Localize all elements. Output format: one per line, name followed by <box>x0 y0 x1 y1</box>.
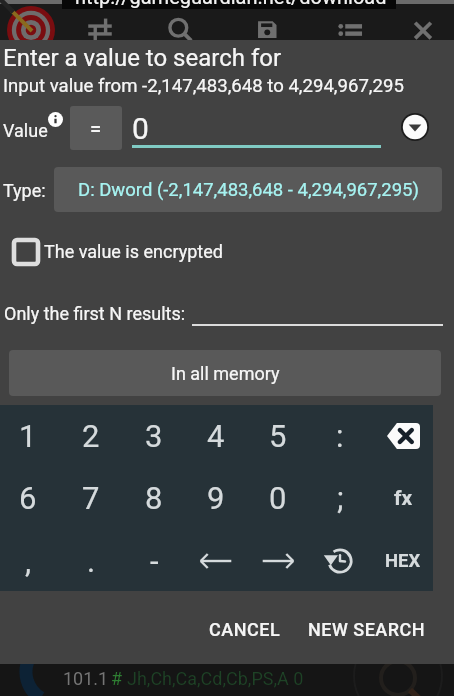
button[interactable]: 9 <box>185 467 247 529</box>
staticText: 101.1 <box>63 668 109 689</box>
staticText: NEW SEARCH <box>308 619 426 640</box>
staticText: 0 <box>132 111 149 146</box>
button[interactable]: In all memory <box>9 350 441 396</box>
button[interactable]: ; <box>309 467 371 529</box>
staticText: Jh,Ch,Ca,Cd,Cb,PS,A 0 <box>127 668 304 689</box>
staticText: # <box>111 668 123 689</box>
button[interactable]: The value is encrypted <box>6 236 236 268</box>
button[interactable]: Settings <box>86 16 114 44</box>
button[interactable]: Backspace <box>372 405 434 467</box>
staticText: Enter a value to search for <box>3 44 282 72</box>
staticText: The value is encrypted <box>44 241 223 262</box>
button[interactable]: 6 <box>0 467 59 529</box>
staticText: . <box>87 543 96 579</box>
staticText: , <box>25 543 32 579</box>
button[interactable]: 2 <box>60 405 122 467</box>
staticText: Value <box>3 120 48 141</box>
staticText: HEX <box>385 550 421 572</box>
button[interactable]: NEW SEARCH <box>297 610 437 648</box>
staticText: 3 <box>145 418 163 454</box>
staticText: Type: <box>3 180 46 201</box>
staticText: = <box>90 117 102 140</box>
staticText: Only the first N results: <box>4 303 186 324</box>
button[interactable]: Search <box>166 16 194 44</box>
staticText: - <box>150 543 159 579</box>
button[interactable]: Choose comparison <box>401 113 429 141</box>
button[interactable]: 4 <box>185 405 247 467</box>
button[interactable]: 8 <box>123 467 185 529</box>
button[interactable]: Move left <box>185 530 247 592</box>
button[interactable]: Move right <box>247 530 309 592</box>
staticText: CANCEL <box>209 619 281 640</box>
button[interactable]: Hex mode <box>372 530 434 592</box>
button[interactable]: History <box>309 530 371 592</box>
staticText: 9 <box>207 480 225 516</box>
button[interactable]: Save <box>253 15 281 43</box>
button[interactable]: , <box>0 530 59 592</box>
button[interactable]: Saved list <box>336 16 364 44</box>
button[interactable]: : <box>309 405 371 467</box>
button[interactable] <box>192 290 443 326</box>
button[interactable]: 3 <box>123 405 185 467</box>
button[interactable]: D: Dword (-2,147,483,648 - 4,294,967,295… <box>54 167 442 212</box>
button[interactable]: = <box>70 106 122 150</box>
staticText: : <box>336 418 344 454</box>
button[interactable]: 0 <box>247 467 309 529</box>
staticText: In all memory <box>171 363 280 384</box>
staticText: 6 <box>19 480 37 516</box>
button[interactable]: 1 <box>0 405 59 467</box>
staticText: 4 <box>207 418 225 454</box>
button[interactable]: - <box>123 530 185 592</box>
button[interactable]: 5 <box>247 405 309 467</box>
button[interactable]: 7 <box>60 467 122 529</box>
staticText: 8 <box>145 480 163 516</box>
staticText: http://gameguardian.net/download <box>75 0 387 8</box>
staticText: 5 <box>269 418 287 454</box>
staticText: fx <box>394 486 413 511</box>
staticText: 7 <box>82 480 100 516</box>
staticText: ; <box>337 480 344 516</box>
staticText: D: Dword (-2,147,483,648 - 4,294,967,295… <box>78 179 419 201</box>
staticText: 1 <box>19 418 37 454</box>
button[interactable]: Close <box>409 16 437 44</box>
button[interactable]: 0 <box>132 106 381 148</box>
button[interactable]: . <box>60 530 122 592</box>
staticText: 2 <box>82 418 100 454</box>
staticText: 0 <box>269 480 287 516</box>
button[interactable]: CANCEL <box>192 610 297 648</box>
button[interactable]: Functions <box>372 467 434 529</box>
staticText: Input value from -2,147,483,648 to 4,294… <box>3 75 404 97</box>
